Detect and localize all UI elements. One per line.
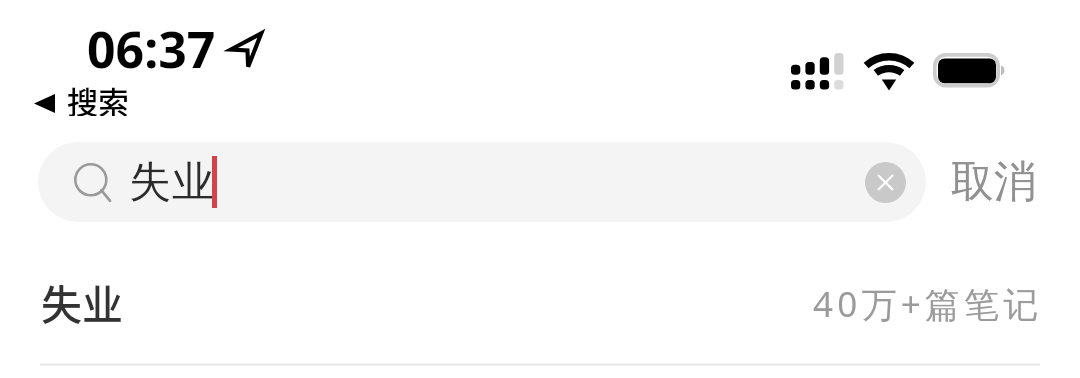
staticText: 失业 xyxy=(41,272,123,331)
staticText: 06:37 xyxy=(87,15,216,83)
staticText: 失业 xyxy=(129,156,216,209)
button[interactable]: 失业 xyxy=(74,142,906,222)
staticText: 搜索 xyxy=(67,78,129,116)
button[interactable]: 搜索 xyxy=(34,78,129,116)
button[interactable]: Clear search xyxy=(865,162,906,203)
button[interactable]: 取消 xyxy=(936,142,1052,222)
staticText: 40万+篇笔记 xyxy=(813,280,1043,328)
button[interactable]: 失业 xyxy=(0,260,1080,365)
staticText: 取消 xyxy=(951,155,1037,209)
